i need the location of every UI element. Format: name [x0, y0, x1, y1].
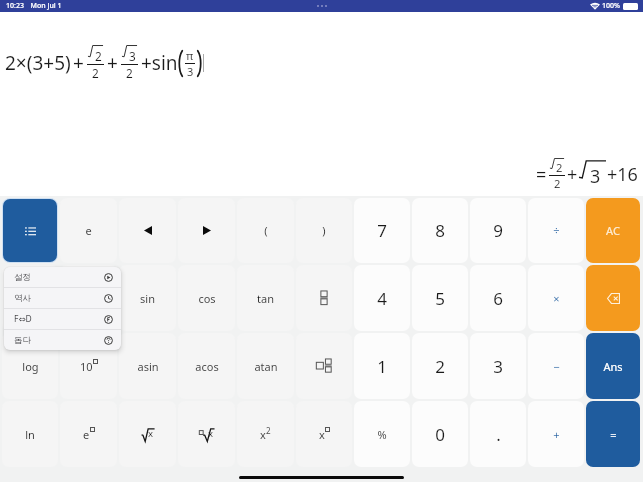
staticText: ) — [322, 223, 326, 238]
button[interactable]: ÷ — [528, 198, 584, 263]
button[interactable]: 1 — [354, 333, 410, 399]
other: Move cursor right — [203, 226, 211, 235]
button[interactable]: |x| — [60, 265, 117, 331]
staticText: x — [319, 427, 325, 442]
button[interactable]: Ans — [586, 333, 640, 399]
other: Mixed number — [316, 358, 332, 374]
staticText: 3 — [187, 64, 194, 79]
button[interactable]: Menu — [3, 199, 57, 262]
staticText: 4 — [377, 287, 387, 310]
button[interactable]: 5 — [412, 265, 468, 331]
button[interactable]: 2 — [412, 333, 468, 399]
button[interactable]: sin — [119, 265, 176, 331]
staticText: + — [107, 50, 118, 76]
other: Wi-Fi — [590, 2, 600, 10]
staticText: x — [260, 427, 266, 442]
button[interactable]: tan — [237, 265, 294, 331]
button[interactable]: 7 — [354, 198, 410, 263]
staticText: = — [536, 162, 547, 187]
button[interactable]: . — [470, 401, 526, 467]
staticText: 돕다 — [14, 335, 31, 346]
button[interactable]: 4 — [354, 265, 410, 331]
staticText: AC — [606, 223, 620, 238]
other: Move cursor left — [144, 226, 152, 235]
staticText: 2 — [92, 65, 99, 81]
staticText: +16 — [607, 162, 638, 187]
staticText: + — [567, 162, 578, 187]
button[interactable]: ) — [296, 198, 352, 263]
staticText: e — [83, 427, 90, 442]
staticText: % — [377, 427, 387, 442]
button[interactable]: asin — [119, 333, 176, 399]
button[interactable]: atan — [237, 333, 294, 399]
button[interactable]: e — [60, 401, 117, 467]
button[interactable]: ( — [237, 198, 294, 263]
staticText: × — [553, 291, 560, 306]
other: Menu — [25, 227, 36, 235]
staticText: 0 — [435, 423, 445, 446]
button[interactable]: e — [60, 198, 117, 263]
staticText: . — [496, 423, 501, 446]
staticText: 10 — [80, 359, 93, 374]
button[interactable]: AC — [586, 198, 640, 263]
button[interactable]: − — [528, 333, 584, 399]
staticText: 2 — [435, 355, 445, 378]
staticText: 2 — [266, 425, 271, 436]
button[interactable]: x — [296, 401, 352, 467]
button[interactable]: ln — [2, 401, 58, 467]
button[interactable]: 역사 — [4, 288, 121, 308]
staticText: 100% — [602, 1, 620, 11]
staticText: 10:23 — [6, 1, 24, 11]
staticText: x — [208, 427, 214, 440]
button[interactable]: Mixed number — [296, 333, 352, 399]
staticText: 2 — [126, 65, 133, 81]
staticText: 3 — [590, 164, 601, 189]
button[interactable]: + — [528, 401, 584, 467]
staticText: 3 — [493, 355, 503, 378]
staticText: π — [186, 48, 194, 63]
button[interactable]: x — [237, 401, 294, 467]
button[interactable]: Fraction — [296, 265, 352, 331]
other: Fraction — [320, 290, 328, 306]
staticText: +sin — [141, 50, 178, 76]
staticText: 설정 — [14, 272, 31, 283]
staticText: 2 — [556, 160, 563, 175]
button[interactable]: 3 — [470, 333, 526, 399]
button[interactable]: 10 — [60, 333, 117, 399]
staticText: atan — [254, 359, 278, 374]
staticText: tan — [257, 291, 274, 306]
button[interactable]: 9 — [470, 198, 526, 263]
staticText: ln — [25, 427, 35, 442]
button[interactable]: log — [2, 333, 58, 399]
button[interactable]: Move cursor left — [119, 198, 176, 263]
button[interactable]: × — [528, 265, 584, 331]
staticText: x — [148, 427, 154, 440]
button[interactable]: F⇔D — [4, 309, 121, 329]
button[interactable]: = — [586, 401, 640, 467]
button[interactable]: x — [178, 401, 235, 467]
staticText: 1 — [377, 355, 387, 378]
button[interactable]: 0 — [412, 401, 468, 467]
staticText: ( — [264, 223, 268, 238]
staticText: 9 — [493, 219, 503, 242]
staticText: acos — [195, 359, 219, 374]
staticText: 6 — [493, 287, 503, 310]
button[interactable]: 돕다 — [4, 330, 121, 350]
button[interactable]: cos — [178, 265, 235, 331]
button[interactable]: 6 — [470, 265, 526, 331]
button[interactable]: 8 — [412, 198, 468, 263]
button[interactable]: acos — [178, 333, 235, 399]
button[interactable]: Backspace — [586, 265, 640, 331]
button[interactable]: % — [354, 401, 410, 467]
staticText: x! — [26, 291, 35, 306]
staticText: 7 — [377, 219, 387, 242]
button[interactable]: x! — [2, 265, 58, 331]
staticText: asin — [137, 359, 159, 374]
button[interactable]: 설정 — [4, 267, 121, 287]
button[interactable]: x — [119, 401, 176, 467]
staticText: Mon Jul 1 — [30, 1, 62, 11]
staticText: ÷ — [553, 223, 560, 238]
button[interactable]: Move cursor right — [178, 198, 235, 263]
staticText: F⇔D — [14, 313, 32, 325]
